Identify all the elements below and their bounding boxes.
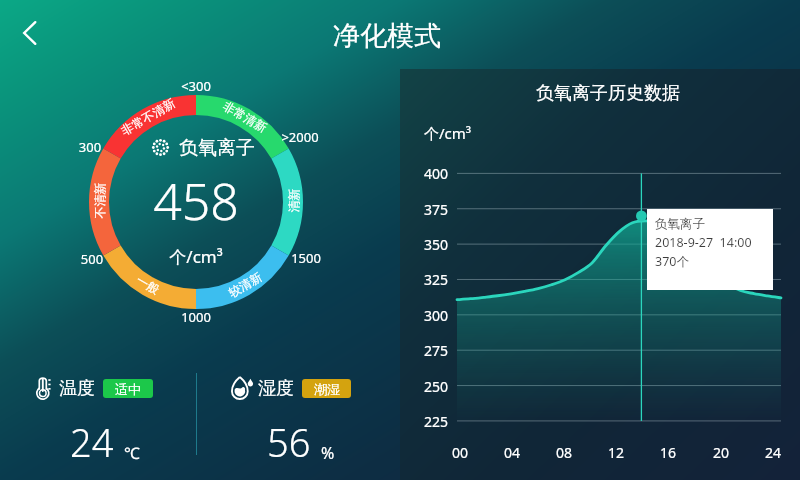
- staticText: 1500: [266, 249, 346, 267]
- staticText: 潮湿: [314, 381, 340, 397]
- staticText: 负氧离子: [655, 216, 705, 232]
- staticText: 2018-9-27 14:00: [655, 234, 752, 251]
- staticText: 非常不清新: [92, 80, 204, 153]
- staticText: 1000: [156, 308, 236, 326]
- staticText: 负氧离子: [179, 136, 255, 160]
- staticText: %: [321, 442, 335, 464]
- staticText: <300: [156, 77, 236, 95]
- staticText: 400: [408, 164, 448, 183]
- staticText: 225: [408, 412, 448, 431]
- staticText: 375: [408, 200, 448, 219]
- staticText: 300: [408, 306, 448, 325]
- staticText: 一般: [92, 248, 204, 321]
- staticText: 300: [50, 138, 130, 156]
- staticText: 08: [544, 443, 584, 462]
- staticText: ℃: [124, 442, 140, 464]
- staticText: 56: [267, 416, 311, 468]
- staticText: 12: [596, 443, 636, 462]
- staticText: 275: [408, 341, 448, 360]
- staticText: 00: [440, 443, 480, 462]
- staticText: 适中: [115, 381, 141, 397]
- staticText: >2000: [260, 128, 340, 146]
- staticText: 350: [408, 235, 448, 254]
- staticText: 458: [96, 167, 296, 235]
- staticText: 24: [753, 443, 793, 462]
- staticText: 清新: [285, 140, 300, 260]
- staticText: 负氧离子历史数据: [408, 82, 800, 105]
- button[interactable]: Back: [6, 13, 46, 53]
- staticText: 04: [492, 443, 532, 462]
- staticText: 24: [70, 416, 114, 468]
- staticText: 370个: [655, 253, 689, 270]
- staticText: 250: [408, 377, 448, 396]
- staticText: 个/cm³: [424, 123, 472, 143]
- staticText: 20: [701, 443, 741, 462]
- staticText: 个/cm³: [96, 245, 296, 268]
- staticText: 湿度: [258, 377, 294, 400]
- staticText: 非常清新: [189, 80, 301, 153]
- staticText: 500: [52, 250, 132, 268]
- staticText: 温度: [59, 377, 95, 400]
- staticText: 净化模式: [287, 19, 487, 53]
- staticText: 较清新: [189, 248, 301, 321]
- staticText: 325: [408, 270, 448, 289]
- staticText: 16: [648, 443, 688, 462]
- staticText: 不清新: [91, 140, 106, 260]
